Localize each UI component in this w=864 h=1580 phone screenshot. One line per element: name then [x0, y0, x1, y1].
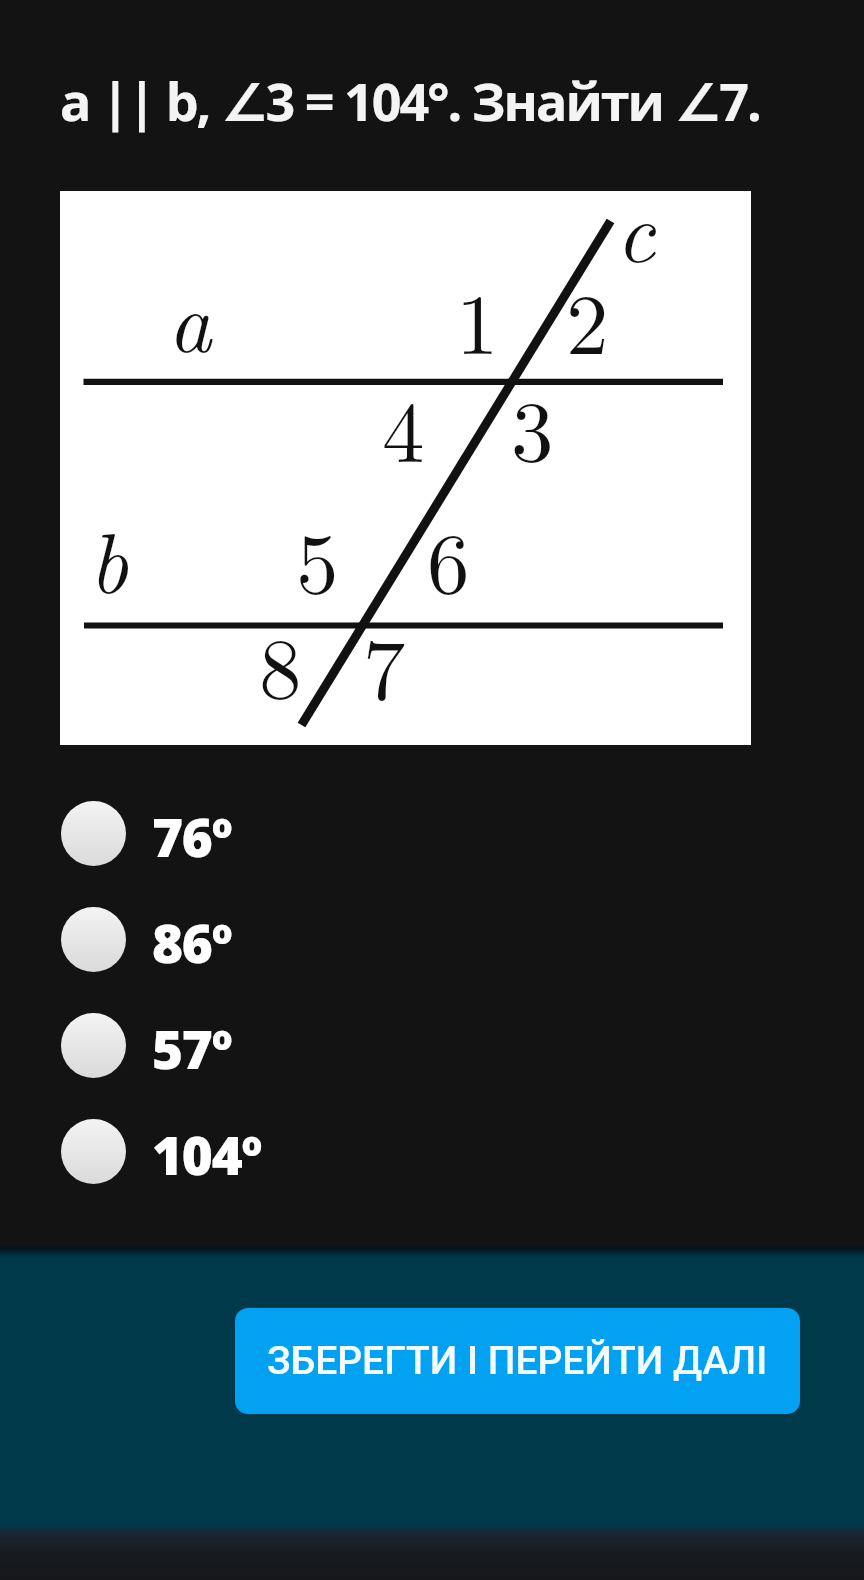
staticText: c	[616, 166, 656, 286]
button[interactable]: 86º	[0, 886, 864, 992]
staticText: 5	[296, 497, 339, 617]
staticText: 3	[511, 365, 554, 485]
staticText: a || b, ∠3 = 104°. Знайти ∠7.	[60, 65, 760, 136]
staticText: 4	[382, 366, 425, 486]
staticText: 8	[259, 602, 302, 722]
button[interactable]: ЗБЕРЕГТИ І ПЕРЕЙТИ ДАЛІ	[235, 1308, 800, 1414]
button[interactable]: 57º	[0, 992, 864, 1098]
staticText: 57º	[152, 1012, 232, 1084]
staticText: 86º	[152, 906, 232, 978]
staticText: 6	[427, 497, 470, 617]
button[interactable]: 76º	[0, 780, 864, 886]
other: Diagram: two parallel lines a and b cut …	[60, 191, 751, 745]
staticText: a	[168, 256, 212, 376]
staticText: 2	[566, 258, 609, 378]
staticText: 7	[363, 603, 406, 723]
staticText: 1	[456, 258, 499, 378]
staticText: b	[89, 497, 129, 617]
staticText: ЗБЕРЕГТИ І ПЕРЕЙТИ ДАЛІ	[267, 1338, 768, 1384]
button[interactable]: 104º	[0, 1098, 864, 1204]
staticText: 76º	[152, 800, 232, 872]
staticText: 104º	[152, 1118, 262, 1190]
